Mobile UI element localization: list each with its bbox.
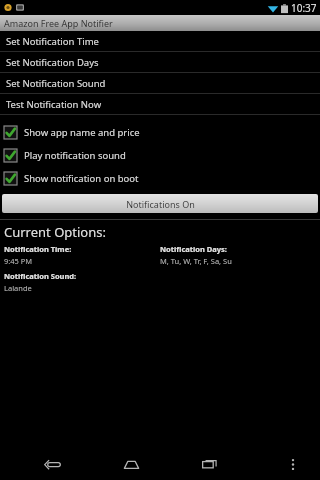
staticText: Set Notification Time <box>6 35 99 48</box>
button[interactable]: Home <box>111 448 151 480</box>
button[interactable]: Notifications On <box>2 194 318 213</box>
staticText: Notification Sound: <box>4 271 77 281</box>
staticText: Show app name and price <box>24 126 140 139</box>
staticText: Amazon Free App Notifier <box>4 17 113 29</box>
button[interactable]: Set Notification Days <box>0 52 320 73</box>
staticText: 10:37 <box>291 1 317 15</box>
button[interactable]: Show notification on boot <box>0 167 320 190</box>
staticText: Current Options: <box>4 223 106 241</box>
button[interactable]: Back <box>32 448 72 480</box>
staticText: Lalande <box>4 283 32 293</box>
button[interactable]: More options <box>280 448 306 480</box>
button[interactable]: Test Notification Now <box>0 94 320 115</box>
staticText: Set Notification Sound <box>6 77 106 90</box>
button[interactable]: Recent apps <box>190 448 230 480</box>
staticText: 9:45 PM <box>4 256 33 266</box>
staticText: Play notification sound <box>24 149 126 162</box>
staticText: Set Notification Days <box>6 56 99 69</box>
staticText: Notifications On <box>126 198 195 210</box>
button[interactable]: Play notification sound <box>0 144 320 167</box>
staticText: Show notification on boot <box>24 172 139 185</box>
staticText: Test Notification Now <box>6 98 102 111</box>
staticText: Notification Days: <box>160 244 227 254</box>
button[interactable]: Set Notification Sound <box>0 73 320 94</box>
button[interactable]: Set Notification Time <box>0 31 320 52</box>
button[interactable]: Show app name and price <box>0 121 320 144</box>
staticText: Notification Time: <box>4 244 72 254</box>
staticText: M, Tu, W, Tr, F, Sa, Su <box>160 256 232 266</box>
